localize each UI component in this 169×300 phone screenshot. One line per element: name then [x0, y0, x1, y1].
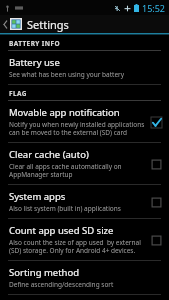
staticText: FLAG — [9, 89, 27, 98]
button[interactable]: System apps — [0, 185, 169, 218]
staticText: Notify you when newly installed applicat… — [9, 120, 145, 137]
staticText: Settings — [27, 17, 69, 32]
button[interactable]: Movable app notification — [0, 101, 169, 142]
button[interactable]: Battery use — [0, 51, 169, 84]
button[interactable]: Clear cache (auto) — [0, 143, 169, 184]
staticText: System apps — [9, 190, 66, 203]
staticText: BATTERY INFO — [9, 39, 60, 48]
button[interactable]: Sorting method — [0, 261, 169, 294]
button[interactable]: Unchecked — [149, 195, 163, 209]
staticText: Also list system (built in) applications — [9, 204, 121, 213]
staticText: Sorting method — [9, 266, 80, 279]
button[interactable]: Navigate up, Settings — [0, 15, 169, 33]
staticText: 15:52 — [142, 2, 166, 14]
staticText: Movable app notification — [9, 106, 120, 119]
staticText: Clear all apps cache automatically on Ap… — [9, 162, 122, 179]
staticText: Also count the size of app used by exter… — [9, 238, 141, 255]
button[interactable]: Checked — [149, 115, 163, 129]
staticText: Define ascending/descending sort — [9, 280, 114, 289]
staticText: Battery use — [9, 56, 60, 69]
button[interactable]: Unchecked — [149, 157, 163, 171]
button[interactable]: Unchecked — [149, 233, 163, 247]
staticText: See what has been using your battery — [9, 70, 125, 79]
staticText: Count app used SD size — [9, 224, 114, 237]
staticText: Clear cache (auto) — [9, 148, 89, 161]
button[interactable]: Count app used SD size — [0, 219, 169, 260]
